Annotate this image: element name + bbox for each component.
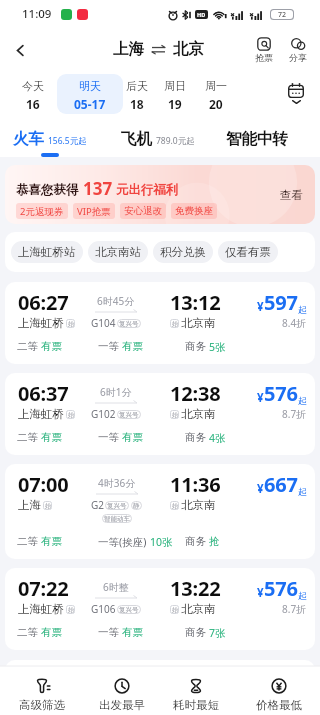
staticText: 始 — [68, 411, 74, 419]
button[interactable]: 价格最低 — [249, 678, 309, 712]
staticText: 周一 — [205, 79, 227, 93]
staticText: 始 — [172, 320, 178, 328]
staticText: 上海 — [113, 39, 144, 59]
button[interactable] — [57, 74, 123, 114]
staticText: 起 — [298, 590, 307, 601]
staticText: 156.5元起 — [48, 135, 87, 147]
staticText: 二等 — [17, 431, 38, 444]
staticText: 一等 — [98, 340, 119, 353]
button[interactable]: 积分兑换 — [153, 241, 213, 263]
staticText: 上海虹桥站 — [18, 245, 76, 259]
staticText: VIP抢票 — [77, 205, 111, 218]
staticText: 8.4折 — [282, 316, 307, 330]
staticText: 8.7折 — [282, 602, 307, 616]
staticText: 07:00 — [18, 471, 69, 498]
button[interactable]: 抢票 — [250, 35, 278, 65]
staticText: G104 — [91, 316, 116, 330]
staticText: 19 — [168, 96, 182, 112]
staticText: 查看 — [280, 188, 303, 202]
staticText: 周日 — [164, 79, 186, 93]
staticText: 恭喜您获得 — [16, 182, 79, 198]
staticText: 576 — [264, 380, 298, 407]
staticText: 05-17 — [74, 96, 106, 112]
button[interactable]: 耗时最短 — [166, 678, 226, 712]
button[interactable]: Calendar — [272, 72, 320, 114]
staticText: 起 — [298, 486, 307, 497]
button[interactable]: 飞机 — [121, 129, 195, 149]
staticText: 出发最早 — [92, 698, 152, 712]
staticText: 北京南 — [181, 498, 216, 512]
staticText: 有票 — [41, 535, 62, 548]
staticText: 一等 — [98, 626, 119, 639]
staticText: 始 — [68, 606, 74, 614]
staticText: HD — [197, 11, 206, 18]
staticText: ¥ — [257, 390, 264, 406]
staticText: 11:36 — [170, 471, 221, 498]
button[interactable]: Back — [0, 28, 40, 72]
button[interactable]: 智能中转 — [226, 129, 288, 149]
staticText: 复兴号 — [107, 502, 127, 510]
staticText: 积分兑换 — [160, 245, 206, 259]
button[interactable]: 07:00 — [5, 464, 315, 559]
staticText: 上海虹桥 — [18, 602, 64, 616]
staticText: 13:22 — [170, 575, 221, 602]
button[interactable]: 高级筛选 — [12, 678, 72, 712]
staticText: 2元返现券 — [20, 205, 64, 218]
staticText: 高级筛选 — [12, 698, 72, 712]
staticText: 始 — [45, 502, 51, 510]
button[interactable]: 今天 — [10, 74, 56, 114]
staticText: 有票 — [122, 626, 143, 639]
staticText: 北京南 — [181, 602, 216, 616]
button[interactable]: 火车 — [13, 129, 87, 157]
staticText: 有票 — [41, 340, 62, 353]
staticText: ¥ — [257, 299, 264, 315]
staticText: 一等(挨座) — [98, 535, 147, 549]
staticText: 有票 — [41, 626, 62, 639]
staticText: 始 — [172, 411, 178, 419]
staticText: 10张 — [150, 535, 173, 549]
staticText: 抢票 — [255, 52, 273, 63]
button[interactable]: 出发最早 — [92, 678, 152, 712]
staticText: 今天 — [22, 79, 44, 93]
staticText: 5张 — [209, 340, 226, 354]
button[interactable]: 07:22 — [5, 568, 315, 650]
staticText: 137 — [83, 177, 113, 200]
staticText: ¥ — [257, 585, 264, 601]
button[interactable]: 06:27 — [5, 282, 315, 364]
staticText: 20 — [209, 96, 223, 112]
staticText: 一等 — [98, 431, 119, 444]
staticText: 上海虹桥 — [18, 316, 64, 330]
staticText: 飞机 — [121, 129, 152, 149]
staticText: 抢 — [209, 535, 220, 548]
button[interactable]: 明天 — [67, 74, 113, 114]
staticText: 商务 — [185, 535, 206, 548]
staticText: 06:37 — [18, 380, 69, 407]
button[interactable]: 周日 — [152, 74, 198, 114]
staticText: 16 — [26, 96, 40, 112]
staticText: 分享 — [289, 52, 307, 63]
staticText: 72 — [278, 10, 287, 19]
button[interactable]: 北京南站 — [88, 241, 148, 263]
staticText: 北京南 — [181, 407, 216, 421]
staticText: 商务 — [185, 431, 206, 444]
staticText: 安心退改 — [124, 205, 162, 217]
button[interactable]: 后天 — [114, 74, 160, 114]
staticText: 二等 — [17, 626, 38, 639]
staticText: 4张 — [209, 431, 226, 445]
staticText: 二等 — [17, 535, 38, 548]
staticText: 6时整 — [103, 580, 129, 594]
staticText: 667 — [264, 471, 298, 498]
staticText: 有票 — [122, 431, 143, 444]
button[interactable]: 06:37 — [5, 373, 315, 455]
staticText: 上海 — [18, 498, 41, 512]
button[interactable]: 周一 — [193, 74, 239, 114]
staticText: 商务 — [185, 626, 206, 639]
button[interactable]: 分享 — [284, 35, 312, 65]
button[interactable]: 仅看有票 — [218, 241, 278, 263]
staticText: 13:12 — [170, 289, 221, 316]
staticText: 后天 — [126, 79, 148, 93]
staticText: 免费换座 — [175, 205, 213, 217]
button[interactable]: 恭喜您获得 — [5, 165, 315, 224]
staticText: 火车 — [13, 129, 44, 149]
button[interactable]: 上海虹桥站 — [11, 241, 83, 263]
